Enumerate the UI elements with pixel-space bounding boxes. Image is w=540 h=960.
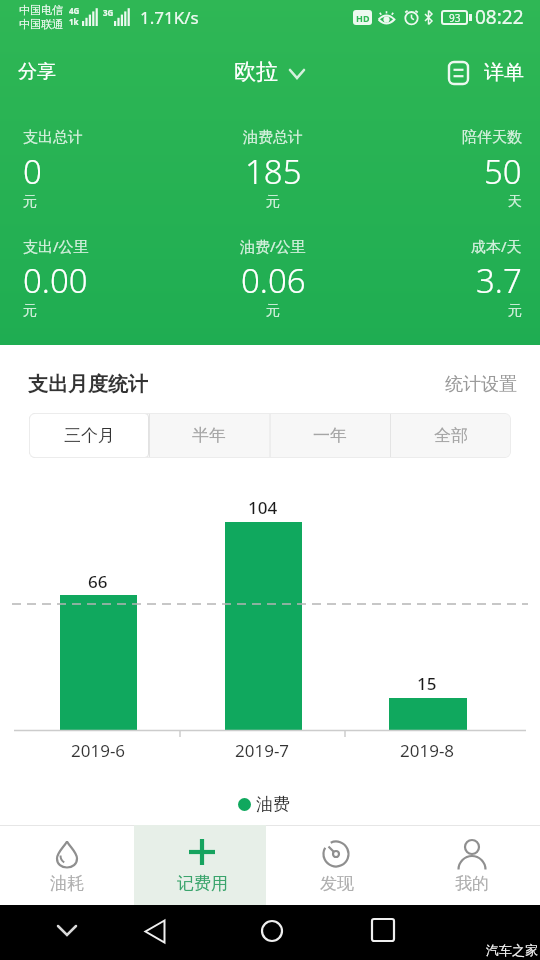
staticText: 油耗 xyxy=(50,873,84,894)
button[interactable]: 油耗 xyxy=(0,825,135,905)
staticText: 元 xyxy=(23,193,37,211)
staticText: 元 xyxy=(508,302,522,320)
staticText: 0 xyxy=(23,149,42,194)
button[interactable]: 三个月 xyxy=(29,413,149,458)
staticText: 50 xyxy=(484,149,522,194)
staticText: 详单 xyxy=(484,60,524,85)
staticText: 元 xyxy=(23,302,37,320)
staticText: 支出月度统计 xyxy=(28,372,148,397)
button[interactable]: 记费用 xyxy=(135,825,270,905)
button[interactable]: 全部 xyxy=(390,413,511,458)
staticText: 支出总计 xyxy=(23,128,83,147)
staticText: 分享 xyxy=(18,60,56,84)
staticText: 4G xyxy=(69,5,80,15)
staticText: 成本/天 xyxy=(471,236,522,256)
staticText: 中国电信 xyxy=(19,3,63,17)
staticText: 统计设置 xyxy=(445,373,517,396)
staticText: 185 xyxy=(245,149,302,194)
staticText: 半年 xyxy=(192,425,226,446)
staticText: 全部 xyxy=(434,425,468,446)
staticText: 2019-7 xyxy=(235,739,290,762)
button[interactable]: 半年 xyxy=(149,413,269,458)
staticText: 发现 xyxy=(320,873,354,894)
button[interactable] xyxy=(242,910,302,955)
staticText: 汽车之家 xyxy=(486,942,538,958)
staticText: 元 xyxy=(266,302,280,320)
staticText: 三个月 xyxy=(64,425,115,446)
staticText: 66 xyxy=(88,570,108,592)
staticText: 记费用 xyxy=(177,873,228,894)
staticText: 油费总计 xyxy=(243,128,303,147)
staticText: 3.7 xyxy=(476,258,522,303)
staticText: 0.06 xyxy=(241,258,306,303)
button[interactable] xyxy=(38,910,98,955)
staticText: 我的 xyxy=(455,873,489,894)
staticText: 3G xyxy=(103,7,114,17)
button[interactable]: 统计设置 xyxy=(395,370,517,398)
staticText: 1.71K/s xyxy=(140,6,199,29)
button[interactable]: 分享 xyxy=(8,54,72,90)
staticText: 陪伴天数 xyxy=(462,128,522,147)
staticText: 中国联通 xyxy=(19,17,63,31)
staticText: 1k xyxy=(69,16,79,26)
staticText: 104 xyxy=(248,496,278,518)
staticText: 15 xyxy=(417,672,437,694)
button[interactable] xyxy=(353,910,413,955)
button[interactable]: 一年 xyxy=(269,413,390,458)
staticText: 2019-8 xyxy=(400,739,455,762)
staticText: 油费/公里 xyxy=(240,236,306,256)
staticText: 天 xyxy=(508,193,522,211)
button[interactable]: 发现 xyxy=(270,825,405,905)
staticText: 支出/公里 xyxy=(23,236,89,256)
staticText: HD xyxy=(356,12,370,24)
button[interactable] xyxy=(125,910,185,955)
staticText: 2019-6 xyxy=(71,739,126,762)
staticText: 油费 xyxy=(256,794,290,815)
button[interactable]: 详单 xyxy=(440,52,540,92)
staticText: 元 xyxy=(266,193,280,211)
staticText: 一年 xyxy=(313,425,347,446)
staticText: 0.00 xyxy=(23,258,88,303)
staticText: 欧拉 xyxy=(234,58,278,86)
staticText: 93 xyxy=(449,11,461,25)
button[interactable]: 我的 xyxy=(405,825,540,905)
staticText: 08:22 xyxy=(475,4,524,30)
button[interactable]: 欧拉 xyxy=(220,52,316,92)
